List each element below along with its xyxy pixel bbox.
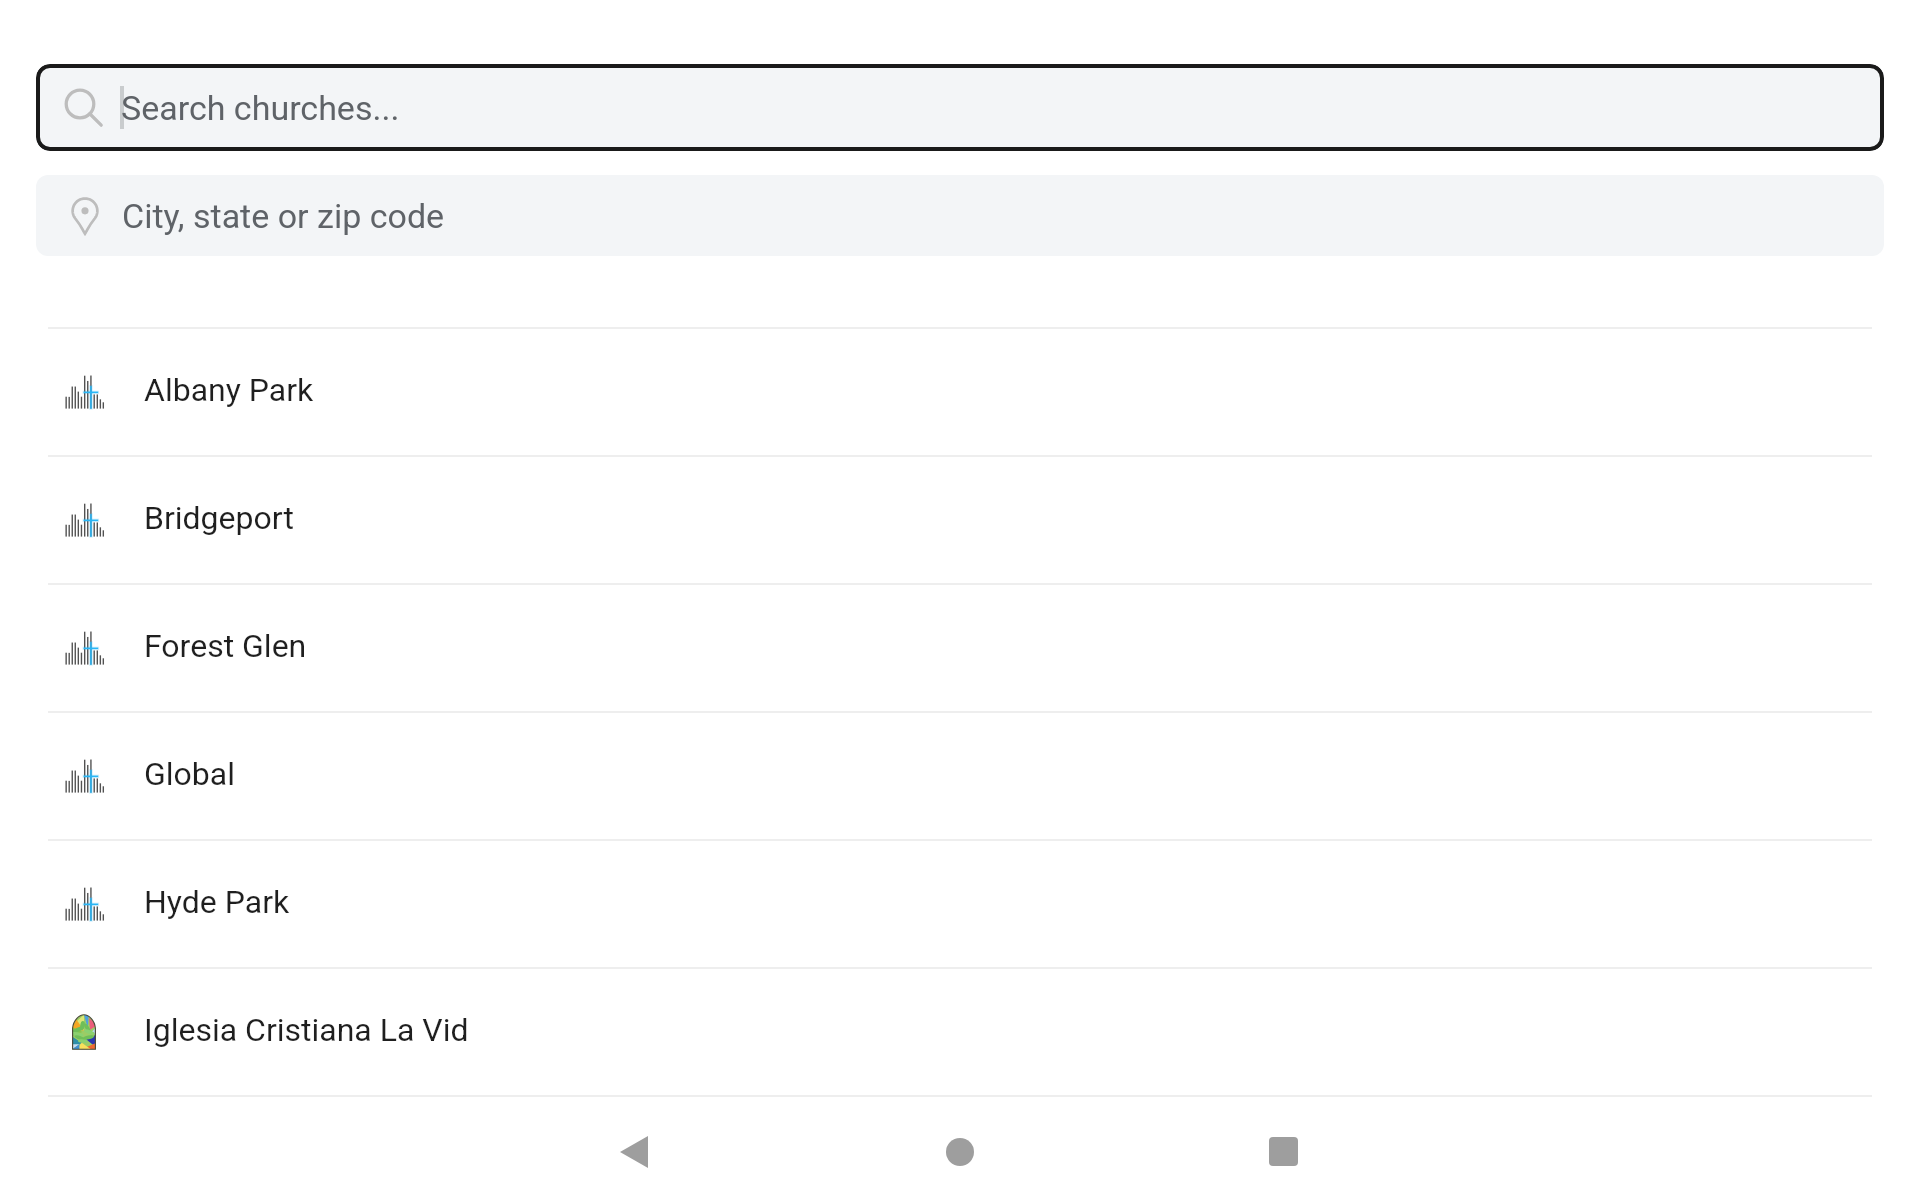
button[interactable]: Recent apps bbox=[1269, 1137, 1298, 1166]
staticText: City, state or zip code bbox=[122, 196, 445, 236]
staticText: Hyde Park bbox=[144, 883, 290, 921]
button[interactable]: Albany Park bbox=[0, 329, 1920, 455]
button[interactable]: Home bbox=[946, 1138, 974, 1166]
button[interactable]: Bridgeport bbox=[0, 457, 1920, 583]
button[interactable]: Global bbox=[0, 713, 1920, 839]
staticText: Albany Park bbox=[144, 371, 314, 409]
staticText: Global bbox=[144, 755, 235, 793]
button[interactable]: City, state or zip code bbox=[36, 175, 1884, 256]
button[interactable]: Search churches bbox=[36, 64, 1884, 151]
staticText: Search churches... bbox=[121, 88, 400, 128]
button[interactable]: Iglesia Cristiana La Vid bbox=[0, 969, 1920, 1095]
staticText: Iglesia Cristiana La Vid bbox=[144, 1011, 469, 1049]
button[interactable]: Forest Glen bbox=[0, 585, 1920, 711]
button[interactable]: Back bbox=[620, 1136, 648, 1168]
staticText: Forest Glen bbox=[144, 627, 307, 665]
staticText: Bridgeport bbox=[144, 499, 294, 537]
button[interactable]: Hyde Park bbox=[0, 841, 1920, 967]
